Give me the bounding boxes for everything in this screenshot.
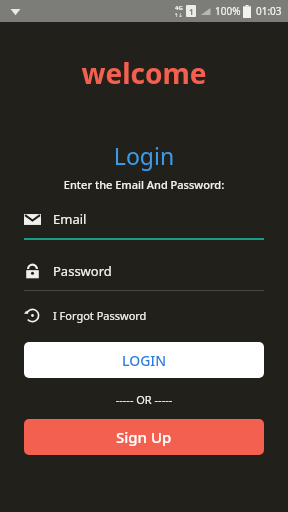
staticText: 01:03 [256,4,282,18]
button[interactable]: LOGIN [24,342,264,378]
staticText: ↑↓ [174,12,183,18]
button[interactable]: Email [24,210,264,240]
staticText: LOGIN [122,351,167,370]
staticText: Sign Up [116,427,172,447]
button[interactable]: Password [24,262,264,291]
button[interactable]: I Forgot Password [24,307,147,324]
button[interactable]: Sign Up [24,419,264,455]
staticText: Email [53,210,87,228]
staticText: welcome [0,54,288,92]
staticText: ----- OR ----- [0,392,288,407]
staticText: 1 [189,6,194,17]
staticText: I Forgot Password [53,308,147,323]
staticText: Password [53,262,112,280]
staticText: Login [0,140,288,171]
staticText: Enter the Email And Password: [0,177,288,192]
staticText: 100% [215,4,241,18]
staticText: 4G [175,4,183,12]
